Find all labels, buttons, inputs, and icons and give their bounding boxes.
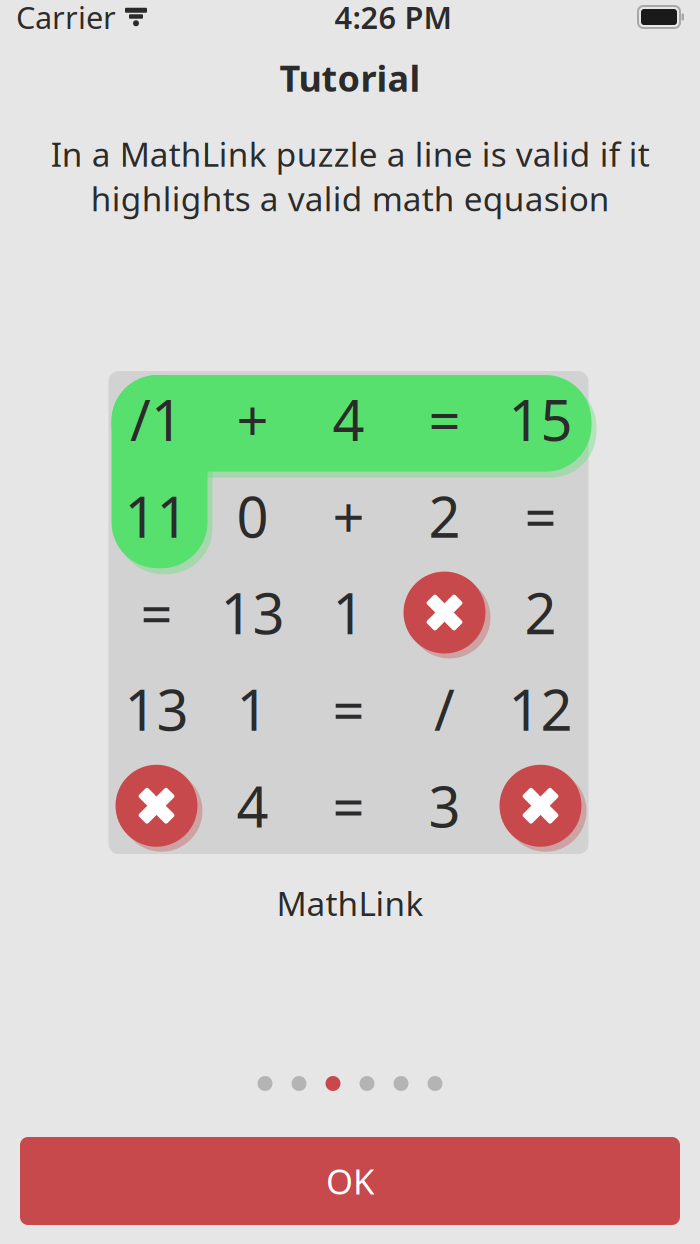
staticText: 1 — [236, 672, 268, 746]
staticText: 4 — [332, 382, 364, 457]
staticText: = — [140, 575, 172, 650]
staticText: 11 — [124, 479, 188, 553]
staticText: OK — [326, 1158, 374, 1204]
staticText: /1 — [130, 382, 183, 457]
staticText: 4 — [236, 769, 268, 843]
staticText: = — [332, 769, 364, 843]
staticText: Tutorial — [279, 54, 420, 102]
staticText: 0 — [236, 479, 268, 553]
staticText: 2 — [428, 479, 460, 553]
staticText: / — [434, 672, 455, 746]
staticText: 4:26 PM — [334, 0, 451, 37]
staticText: + — [332, 479, 364, 553]
button[interactable]: OK — [20, 1137, 680, 1225]
staticText: Carrier — [16, 0, 116, 37]
staticText: 13 — [124, 672, 188, 746]
staticText: = — [524, 479, 556, 553]
staticText: = — [428, 382, 460, 457]
staticText: + — [236, 382, 268, 457]
staticText: 1 — [332, 575, 364, 650]
staticText: 13 — [220, 575, 284, 650]
staticText: 15 — [508, 382, 572, 457]
staticText: In a MathLink puzzle a line is valid if … — [50, 132, 649, 220]
staticText: MathLink — [276, 881, 423, 925]
staticText: 12 — [508, 672, 572, 746]
staticText: 2 — [524, 575, 556, 650]
staticText: = — [332, 672, 364, 746]
staticText: 3 — [428, 769, 460, 843]
